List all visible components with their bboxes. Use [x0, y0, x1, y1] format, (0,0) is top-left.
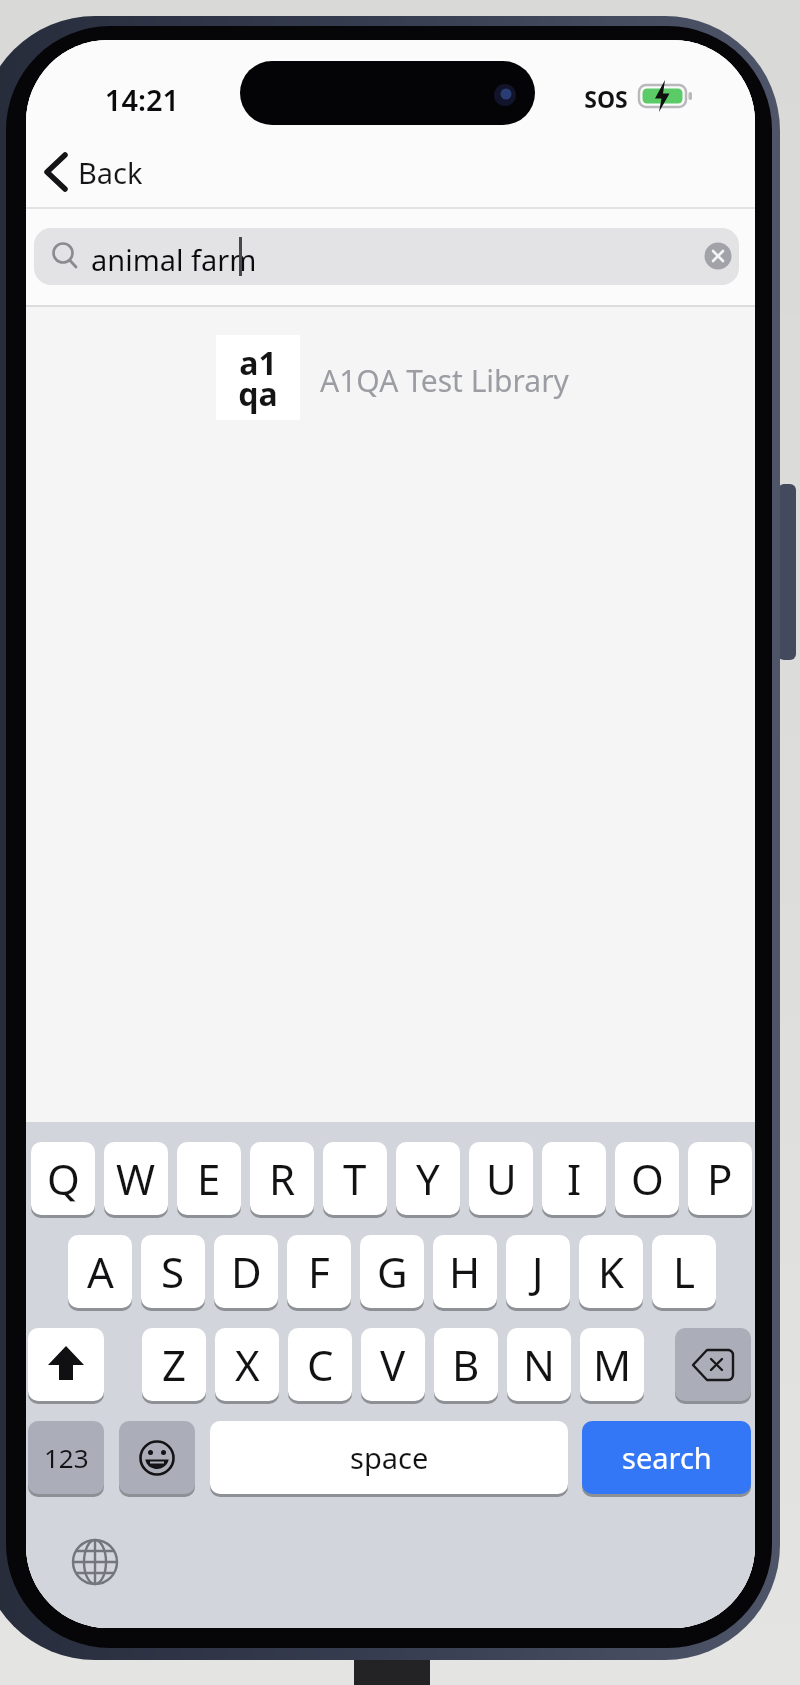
- button[interactable]: F: [287, 1235, 351, 1311]
- staticText: 14:21: [86, 80, 198, 124]
- button[interactable]: V: [361, 1328, 425, 1404]
- staticText: N: [523, 1336, 555, 1393]
- button[interactable]: G: [360, 1235, 424, 1311]
- button[interactable]: [704, 242, 732, 270]
- staticText: R: [269, 1150, 296, 1207]
- staticText: search: [622, 1438, 712, 1477]
- staticText: W: [116, 1150, 156, 1207]
- button[interactable]: R: [250, 1142, 314, 1218]
- button[interactable]: L: [652, 1235, 716, 1311]
- staticText: C: [307, 1336, 334, 1393]
- button[interactable]: Y: [396, 1142, 460, 1218]
- button[interactable]: [675, 1328, 751, 1404]
- button[interactable]: I: [542, 1142, 606, 1218]
- button[interactable]: T: [323, 1142, 387, 1218]
- button[interactable]: [71, 1538, 119, 1586]
- button[interactable]: search: [582, 1421, 751, 1497]
- staticText: Q: [47, 1150, 80, 1207]
- button[interactable]: E: [177, 1142, 241, 1218]
- staticText: K: [598, 1243, 624, 1300]
- button[interactable]: P: [688, 1142, 752, 1218]
- button[interactable]: C: [288, 1328, 352, 1404]
- staticText: S: [161, 1243, 185, 1300]
- button[interactable]: J: [506, 1235, 570, 1311]
- button[interactable]: 123: [28, 1421, 104, 1497]
- staticText: F: [308, 1243, 330, 1300]
- staticText: O: [631, 1150, 664, 1207]
- button[interactable]: [119, 1421, 195, 1497]
- button[interactable]: animal farm: [34, 228, 739, 285]
- staticText: G: [377, 1243, 408, 1300]
- button[interactable]: [28, 1328, 104, 1404]
- button[interactable]: A: [68, 1235, 132, 1311]
- button[interactable]: X: [215, 1328, 279, 1404]
- staticText: Z: [162, 1336, 187, 1393]
- staticText: I: [567, 1150, 582, 1207]
- staticText: space: [350, 1438, 429, 1477]
- button[interactable]: a1 qa: [206, 325, 626, 429]
- button[interactable]: N: [507, 1328, 571, 1404]
- staticText: a1 qa: [238, 341, 278, 415]
- staticText: P: [707, 1150, 733, 1207]
- staticText: SOS: [574, 83, 638, 118]
- staticText: H: [449, 1243, 481, 1300]
- button[interactable]: K: [579, 1235, 643, 1311]
- button[interactable]: O: [615, 1142, 679, 1218]
- button[interactable]: H: [433, 1235, 497, 1311]
- staticText: 123: [44, 1440, 89, 1475]
- staticText: B: [452, 1336, 480, 1393]
- staticText: J: [532, 1243, 544, 1300]
- button[interactable]: Back: [34, 146, 194, 198]
- button[interactable]: B: [434, 1328, 498, 1404]
- staticText: Back: [78, 153, 143, 192]
- button[interactable]: M: [580, 1328, 644, 1404]
- button[interactable]: space: [210, 1421, 568, 1497]
- staticText: L: [673, 1243, 696, 1300]
- staticText: M: [593, 1336, 632, 1393]
- button[interactable]: D: [214, 1235, 278, 1311]
- staticText: U: [486, 1150, 517, 1207]
- button[interactable]: S: [141, 1235, 205, 1311]
- button[interactable]: Q: [31, 1142, 95, 1218]
- staticText: D: [231, 1243, 262, 1300]
- staticText: V: [380, 1336, 406, 1393]
- staticText: X: [235, 1336, 260, 1393]
- staticText: animal farm: [91, 240, 257, 279]
- staticText: T: [343, 1150, 367, 1207]
- button[interactable]: U: [469, 1142, 533, 1218]
- staticText: E: [197, 1150, 221, 1207]
- button[interactable]: W: [104, 1142, 168, 1218]
- staticText: A1QA Test Library: [320, 360, 569, 401]
- button[interactable]: Z: [142, 1328, 206, 1404]
- staticText: Y: [416, 1150, 440, 1207]
- staticText: A: [87, 1243, 114, 1300]
